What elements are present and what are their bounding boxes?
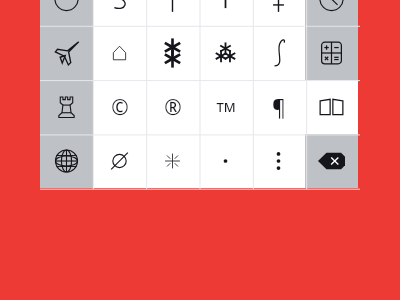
button[interactable]: Two asterisks — [146, 26, 199, 80]
button[interactable]: Reference mark — [146, 134, 199, 188]
button[interactable]: Plus — [199, 0, 252, 26]
button[interactable]: ¶ — [252, 80, 305, 134]
button[interactable]: TM — [199, 80, 252, 134]
button[interactable]: Language — [40, 134, 93, 188]
button[interactable]: Empty set — [93, 134, 146, 188]
button[interactable]: Minus — [40, 0, 93, 26]
button[interactable]: Calculator — [305, 26, 358, 80]
other: Home — [93, 26, 146, 80]
staticText: ¶ — [272, 93, 286, 122]
button[interactable]: Chess rook — [40, 80, 93, 134]
button[interactable]: Double dagger — [252, 0, 305, 26]
other: Calculator — [305, 26, 358, 80]
button[interactable]: More — [252, 134, 305, 188]
button[interactable]: Airplane mode — [40, 26, 93, 80]
button[interactable]: Asterism — [199, 26, 252, 80]
button[interactable]: Section sign — [93, 0, 146, 26]
other: Asterism — [199, 26, 252, 80]
other: Airplane mode — [40, 26, 93, 80]
button[interactable]: Integral — [252, 26, 305, 80]
other: Empty set — [93, 134, 146, 188]
other: Dagger — [146, 0, 199, 26]
other: Double dagger — [252, 0, 305, 26]
other: Chess rook — [40, 80, 93, 134]
button[interactable]: Dagger — [146, 0, 199, 26]
other: Backspace — [305, 134, 358, 188]
other: Minus — [40, 0, 93, 26]
other: More — [252, 134, 305, 188]
other: Reference mark — [146, 134, 199, 188]
staticText: TM — [216, 98, 236, 116]
other: Plus — [199, 0, 252, 26]
button[interactable]: ® — [146, 80, 199, 134]
staticText: ® — [164, 93, 182, 122]
other: Dictionary — [305, 80, 358, 134]
button[interactable]: Period — [199, 134, 252, 188]
button[interactable]: Backspace — [305, 134, 358, 188]
button[interactable]: © — [93, 80, 146, 134]
other: Language — [40, 134, 93, 188]
other: Period — [199, 134, 252, 188]
other: Section sign — [93, 0, 146, 26]
staticText: © — [111, 93, 129, 122]
button[interactable]: Dictionary — [305, 80, 358, 134]
button[interactable]: Clock — [305, 0, 358, 26]
other: Clock — [305, 0, 358, 26]
other: Two asterisks — [146, 26, 199, 80]
other: Integral — [252, 26, 305, 80]
button[interactable]: Home — [93, 26, 146, 80]
